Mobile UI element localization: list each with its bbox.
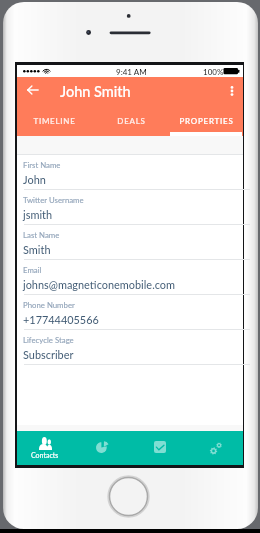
button[interactable]: TIMELINE bbox=[16, 108, 93, 136]
button[interactable]: Email bbox=[17, 260, 243, 295]
button[interactable]: Contacts bbox=[17, 431, 73, 465]
button[interactable]: PROPERTIES bbox=[170, 108, 242, 136]
button[interactable]: Lifecycle Stage bbox=[17, 330, 243, 365]
button[interactable]: Back bbox=[22, 79, 44, 101]
staticText: 9:41 AM bbox=[116, 67, 147, 77]
staticText: johns@magneticonemobile.com bbox=[23, 278, 176, 291]
button[interactable]: Reports bbox=[74, 431, 130, 465]
staticText: John Smith bbox=[60, 83, 131, 100]
button[interactable]: Tasks bbox=[132, 431, 188, 465]
button[interactable]: Twitter Username bbox=[17, 190, 243, 225]
staticText: 100% bbox=[203, 67, 224, 77]
staticText: Subscriber bbox=[23, 348, 74, 361]
staticText: +17744405566 bbox=[23, 313, 99, 326]
button[interactable]: First Name bbox=[17, 155, 243, 190]
staticText: Email bbox=[23, 265, 42, 274]
staticText: John bbox=[23, 173, 46, 186]
staticText: jsmith bbox=[23, 208, 53, 221]
button[interactable]: DEALS bbox=[93, 108, 170, 136]
button[interactable]: Last Name bbox=[17, 225, 243, 260]
button[interactable]: Phone Number bbox=[17, 295, 243, 330]
staticText: Contacts bbox=[31, 451, 59, 459]
button[interactable]: More options bbox=[221, 79, 243, 101]
staticText: Last Name bbox=[23, 230, 60, 239]
staticText: Smith bbox=[23, 243, 51, 256]
staticText: Twitter Username bbox=[23, 195, 84, 204]
staticText: Phone Number bbox=[23, 300, 75, 309]
staticText: First Name bbox=[23, 160, 61, 169]
staticText: Lifecycle Stage bbox=[23, 335, 74, 344]
staticText: PROPERTIES bbox=[179, 116, 234, 126]
staticText: TIMELINE bbox=[33, 116, 76, 126]
staticText: DEALS bbox=[117, 116, 146, 126]
button[interactable]: Settings bbox=[188, 431, 244, 465]
